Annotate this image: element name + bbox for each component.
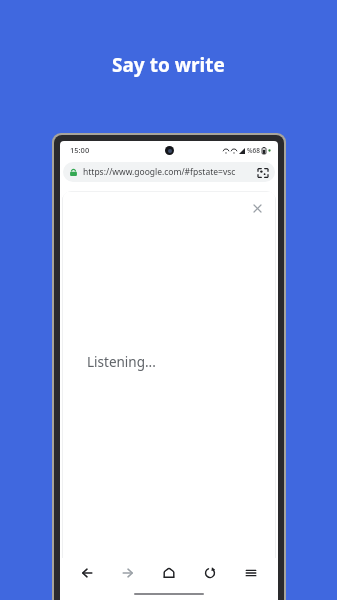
button[interactable]: Forward [114,559,142,587]
button[interactable]: Menu [237,559,265,587]
button[interactable]: Reload [196,559,224,587]
staticText: %68 [247,146,260,155]
staticText: https://www.google.com/#fpstate=vsc [83,166,253,178]
button[interactable]: Back [73,559,101,587]
button[interactable]: Close [246,197,268,219]
staticText: Listening... [87,353,156,371]
staticText: Say to write [112,52,225,78]
staticText: 15:00 [70,145,90,155]
button[interactable]: https://www.google.com/#fpstate=vsc [63,162,275,182]
button[interactable]: Home [155,559,183,587]
button[interactable]: Google Lens [256,166,269,179]
